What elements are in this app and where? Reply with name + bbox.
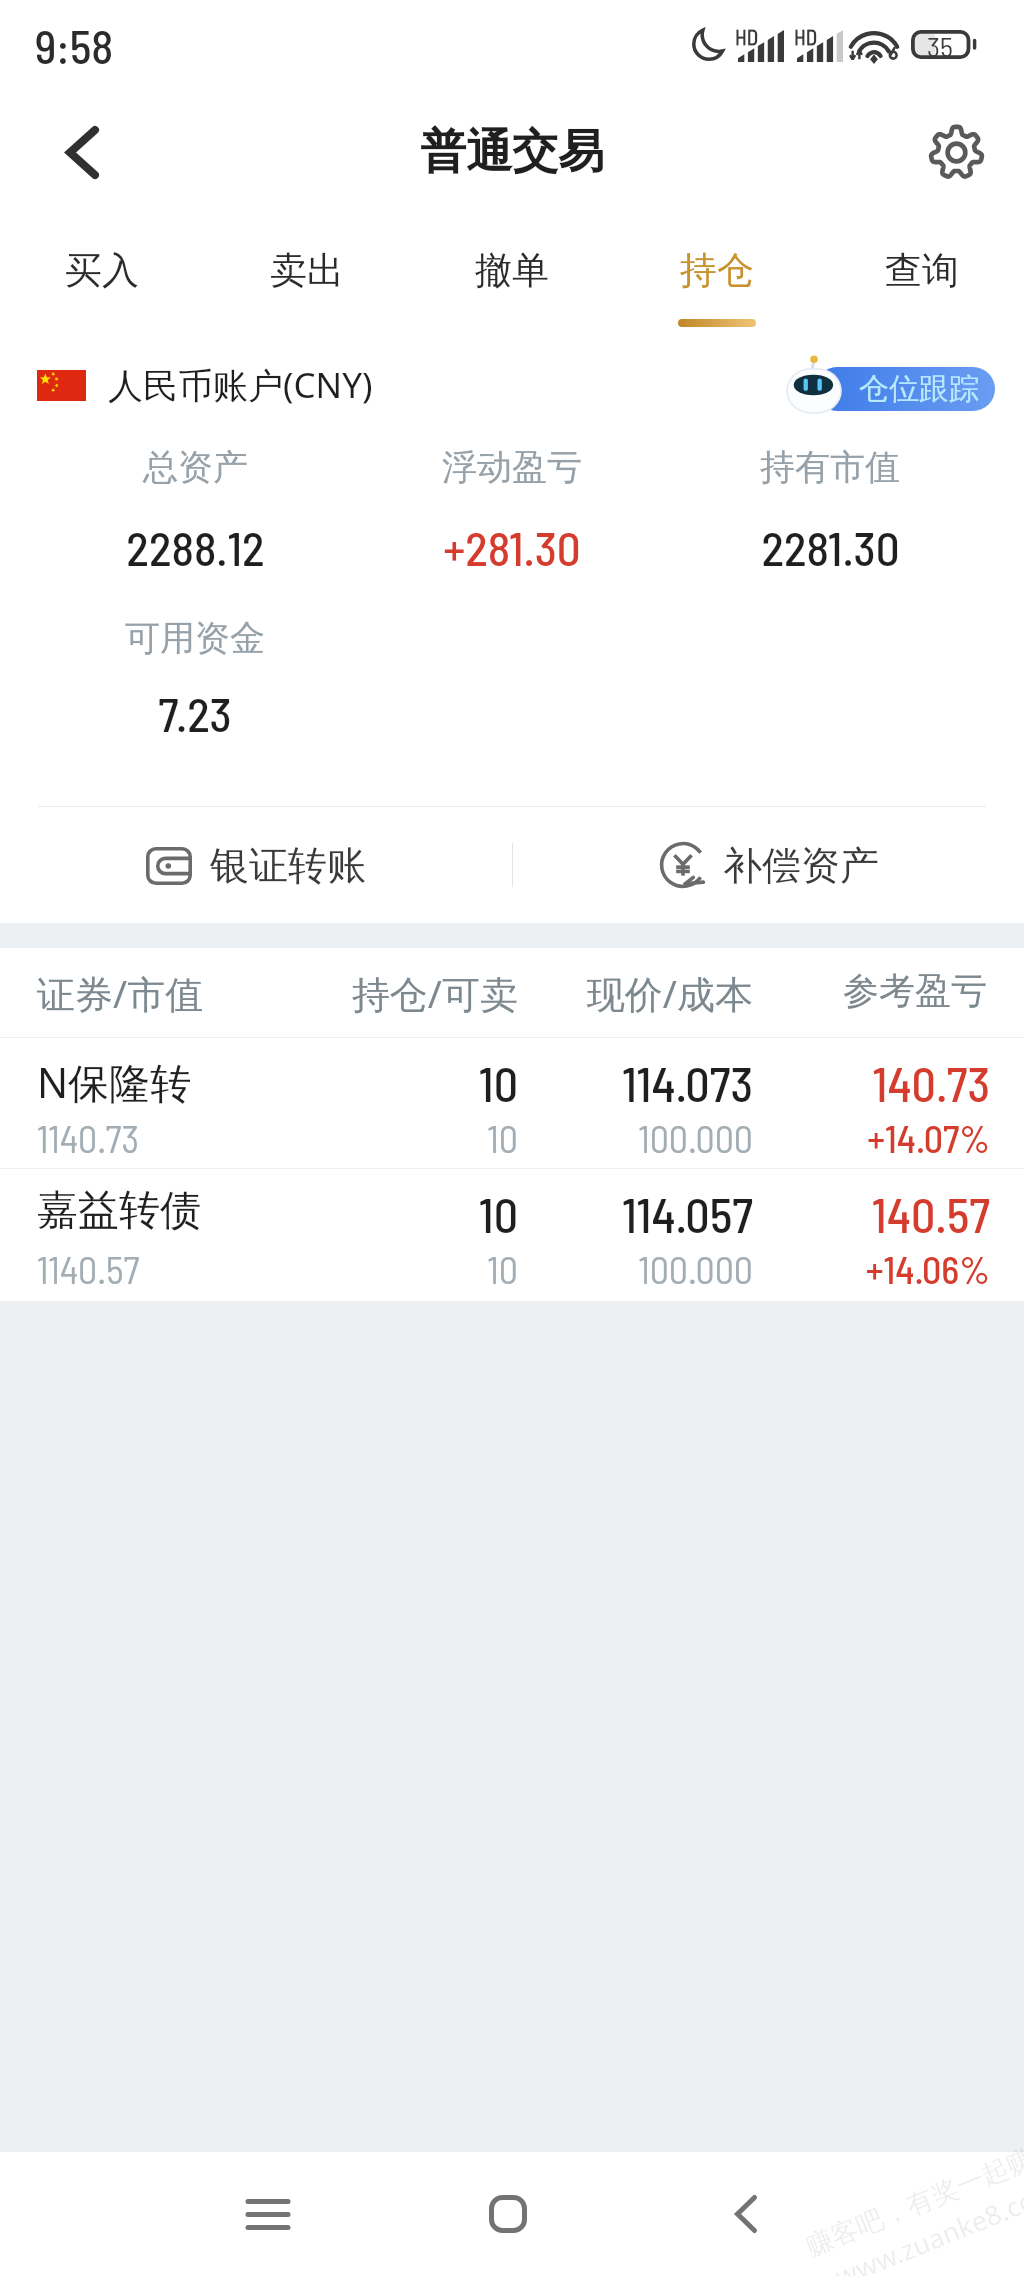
staticText: 银证转账	[210, 841, 366, 890]
staticText: 参考盈亏	[843, 968, 987, 1013]
staticText: +14.07%	[867, 1115, 990, 1161]
staticText: 10	[478, 1054, 518, 1112]
staticText: 赚客吧，有奖一起赚！ www.zuanke8.com	[801, 2131, 1024, 2276]
staticText: 10	[478, 1185, 518, 1243]
staticText: 2281.30	[761, 519, 900, 575]
staticText: 现价/成本	[586, 967, 753, 1019]
staticText: 1140.57	[37, 1246, 140, 1292]
button[interactable]: Settings	[912, 108, 1000, 196]
staticText: 浮动盈亏	[442, 445, 582, 489]
staticText: 2288.12	[126, 519, 265, 575]
staticText: 总资产	[143, 445, 248, 489]
staticText: 100.000	[638, 1115, 753, 1161]
button[interactable]: Back	[38, 108, 126, 196]
button[interactable]: 补偿资产	[512, 807, 1024, 923]
staticText: +14.06%	[865, 1246, 990, 1292]
button[interactable]: N保隆转	[0, 1037, 1024, 1168]
staticText: 仓位跟踪	[859, 370, 979, 408]
staticText: 撤单	[475, 247, 549, 294]
staticText: 140.73	[872, 1054, 990, 1112]
staticText: 买入	[65, 247, 139, 294]
staticText: 100.000	[638, 1246, 753, 1292]
button[interactable]: 嘉益转债	[0, 1168, 1024, 1299]
button[interactable]: Home	[448, 2152, 568, 2276]
staticText: 可用资金	[125, 616, 265, 660]
staticText: +281.30	[443, 519, 581, 575]
button[interactable]: 持仓	[614, 220, 819, 330]
staticText: 114.057	[622, 1185, 753, 1243]
staticText: 卖出	[270, 247, 344, 294]
button[interactable]: 银证转账	[0, 807, 512, 923]
staticText: 140.57	[871, 1185, 990, 1243]
staticText: 10	[487, 1115, 518, 1161]
staticText: 证券/市值	[37, 967, 204, 1019]
button[interactable]: 查询	[819, 220, 1024, 330]
staticText: 114.073	[622, 1054, 753, 1112]
staticText: 35	[927, 29, 953, 58]
staticText: 人民币账户(CNY)	[108, 361, 373, 409]
button[interactable]: 买入	[0, 220, 204, 330]
staticText: 普通交易	[420, 123, 604, 181]
button[interactable]: 仓位跟踪	[815, 367, 995, 411]
button[interactable]: Recents	[208, 2152, 328, 2276]
button[interactable]: 卖出	[204, 220, 409, 330]
staticText: 查询	[885, 247, 959, 294]
button[interactable]: Back	[686, 2152, 806, 2276]
staticText: HD	[735, 24, 759, 49]
staticText: N保隆转	[37, 1054, 192, 1110]
staticText: 补偿资产	[723, 841, 879, 890]
button[interactable]: 撤单	[409, 220, 614, 330]
staticText: 持仓/可卖	[351, 967, 518, 1019]
staticText: 9:58	[35, 18, 114, 73]
staticText: 持有市值	[760, 445, 900, 489]
staticText: HD	[794, 24, 818, 49]
staticText: 10	[487, 1246, 518, 1292]
staticText: 7.23	[158, 685, 232, 741]
staticText: 持仓	[680, 247, 754, 294]
staticText: 嘉益转债	[37, 1185, 201, 1237]
staticText: 1140.73	[37, 1115, 140, 1161]
